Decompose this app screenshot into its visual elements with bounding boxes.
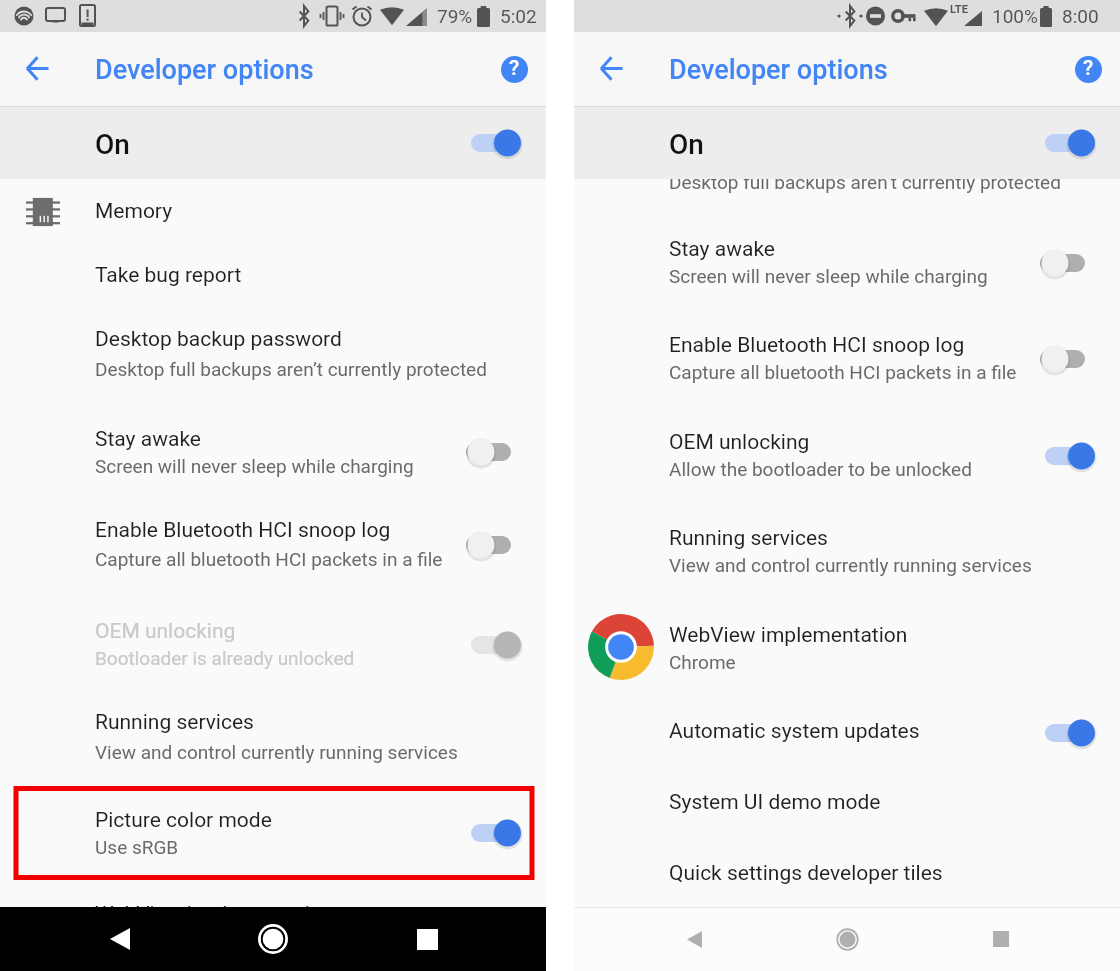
staticText: System UI demo mode [669, 790, 881, 815]
button[interactable]: Back [586, 43, 637, 94]
button[interactable] [0, 592, 546, 684]
staticText: WebView implementation [95, 902, 334, 927]
staticText: Chrome [669, 651, 736, 673]
staticText: Screen will never sleep while charging [95, 455, 414, 477]
staticText: View and control currently running servi… [669, 554, 1032, 576]
button[interactable]: Toggle [453, 118, 533, 168]
staticText: 100% [992, 5, 1038, 27]
staticText: Desktop full backups aren’t currently pr… [95, 358, 487, 380]
button[interactable]: Toggle [1027, 118, 1107, 168]
staticText: Quick settings developer tiles [669, 861, 943, 886]
staticText: Running services [95, 710, 254, 735]
staticText: Enable Bluetooth HCI snoop log [669, 333, 965, 358]
staticText: On [669, 128, 704, 161]
staticText: ? [1083, 56, 1094, 81]
staticText: Take bug report [95, 263, 242, 288]
button[interactable]: Toggle [1027, 431, 1107, 481]
button[interactable] [574, 500, 1120, 592]
button[interactable] [574, 210, 1120, 302]
button[interactable] [574, 610, 1120, 690]
button[interactable]: Back [96, 915, 144, 963]
button[interactable]: Toggle [453, 520, 533, 570]
staticText: On [95, 128, 130, 161]
button[interactable] [0, 492, 546, 584]
button[interactable]: Help [489, 44, 540, 95]
staticText: Capture all bluetooth HCI packets in a f… [95, 548, 443, 570]
staticText: OEM unlocking [669, 430, 810, 455]
button[interactable]: Toggle [453, 808, 533, 858]
button[interactable] [0, 107, 546, 179]
button[interactable] [574, 700, 1120, 768]
staticText: Screen will never sleep while charging [669, 265, 988, 287]
staticText: WebView implementation [669, 623, 908, 648]
button[interactable] [574, 402, 1120, 494]
staticText: ? [509, 56, 520, 81]
button[interactable]: Back [12, 43, 63, 94]
staticText: Picture color mode [95, 808, 272, 833]
button[interactable]: Home [823, 915, 871, 963]
button[interactable]: Recents [977, 915, 1025, 963]
button[interactable] [0, 400, 546, 492]
staticText: Allow the bootloader to be unlocked [669, 458, 972, 480]
button[interactable]: Toggle [1027, 708, 1107, 758]
button[interactable] [0, 684, 546, 776]
staticText: Capture all bluetooth HCI packets in a f… [669, 361, 1017, 383]
button[interactable] [574, 107, 1120, 179]
button[interactable]: Toggle [453, 427, 533, 477]
staticText: Enable Bluetooth HCI snoop log [95, 518, 391, 543]
button[interactable]: Toggle [1027, 334, 1107, 384]
staticText: 5:02 [500, 5, 537, 27]
staticText: Use sRGB [95, 836, 179, 858]
staticText: Memory [95, 199, 173, 224]
staticText: LTE [950, 3, 968, 16]
button[interactable] [0, 308, 546, 400]
button[interactable]: Back [670, 915, 718, 963]
staticText: Desktop full backups aren’t currently pr… [669, 171, 1061, 193]
staticText: Desktop backup password [95, 327, 342, 352]
button[interactable]: Recents [403, 915, 451, 963]
staticText: 79% [437, 5, 473, 27]
staticText: Stay awake [669, 237, 775, 262]
button[interactable] [0, 244, 546, 308]
staticText: Developer options [669, 54, 888, 86]
staticText: View and control currently running servi… [95, 741, 458, 763]
staticText: 8:00 [1062, 5, 1099, 27]
button[interactable]: Help [1063, 44, 1114, 95]
button[interactable]: Toggle [453, 620, 533, 670]
staticText: Stay awake [95, 427, 201, 452]
button[interactable]: Toggle [1027, 238, 1107, 288]
button[interactable]: Home [249, 915, 297, 963]
button[interactable] [574, 772, 1120, 840]
button[interactable] [574, 306, 1120, 398]
button[interactable] [0, 180, 546, 244]
button[interactable] [0, 786, 546, 879]
staticText: Running services [669, 526, 828, 551]
staticText: Automatic system updates [669, 719, 920, 744]
button[interactable] [574, 844, 1120, 908]
staticText: Bootloader is already unlocked [95, 647, 355, 669]
staticText: Developer options [95, 54, 314, 86]
staticText: OEM unlocking [95, 619, 236, 644]
